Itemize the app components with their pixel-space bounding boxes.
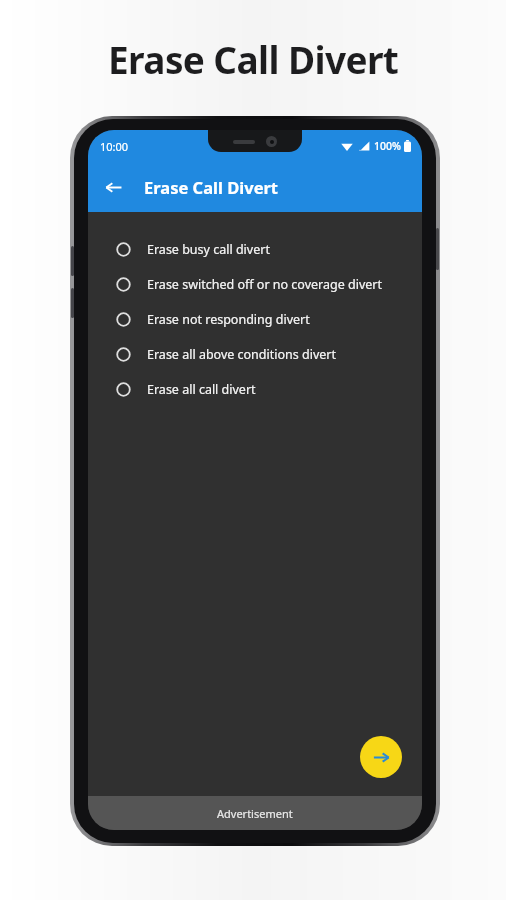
staticText: 100% [374, 139, 401, 153]
button[interactable]: Erase not responding divert [88, 302, 422, 337]
staticText: Erase Call Divert [144, 176, 279, 198]
button[interactable]: Erase all above conditions divert [88, 337, 422, 372]
button[interactable]: Erase busy call divert [88, 232, 422, 267]
staticText: Erase switched off or no coverage divert [147, 276, 382, 293]
staticText: Erase busy call divert [147, 241, 270, 258]
button[interactable]: Back [93, 167, 133, 207]
staticText: Erase all call divert [147, 381, 256, 398]
button[interactable]: Erase switched off or no coverage divert [88, 267, 422, 302]
staticText: Erase not responding divert [147, 311, 310, 328]
button[interactable]: Advertisement [88, 796, 422, 830]
staticText: Advertisement [217, 806, 293, 821]
button[interactable]: Next [360, 736, 402, 778]
staticText: Erase all above conditions divert [147, 346, 336, 363]
staticText: 10:00 [100, 139, 129, 154]
button[interactable]: Erase all call divert [88, 372, 422, 407]
staticText: Erase Call Divert [108, 34, 399, 84]
